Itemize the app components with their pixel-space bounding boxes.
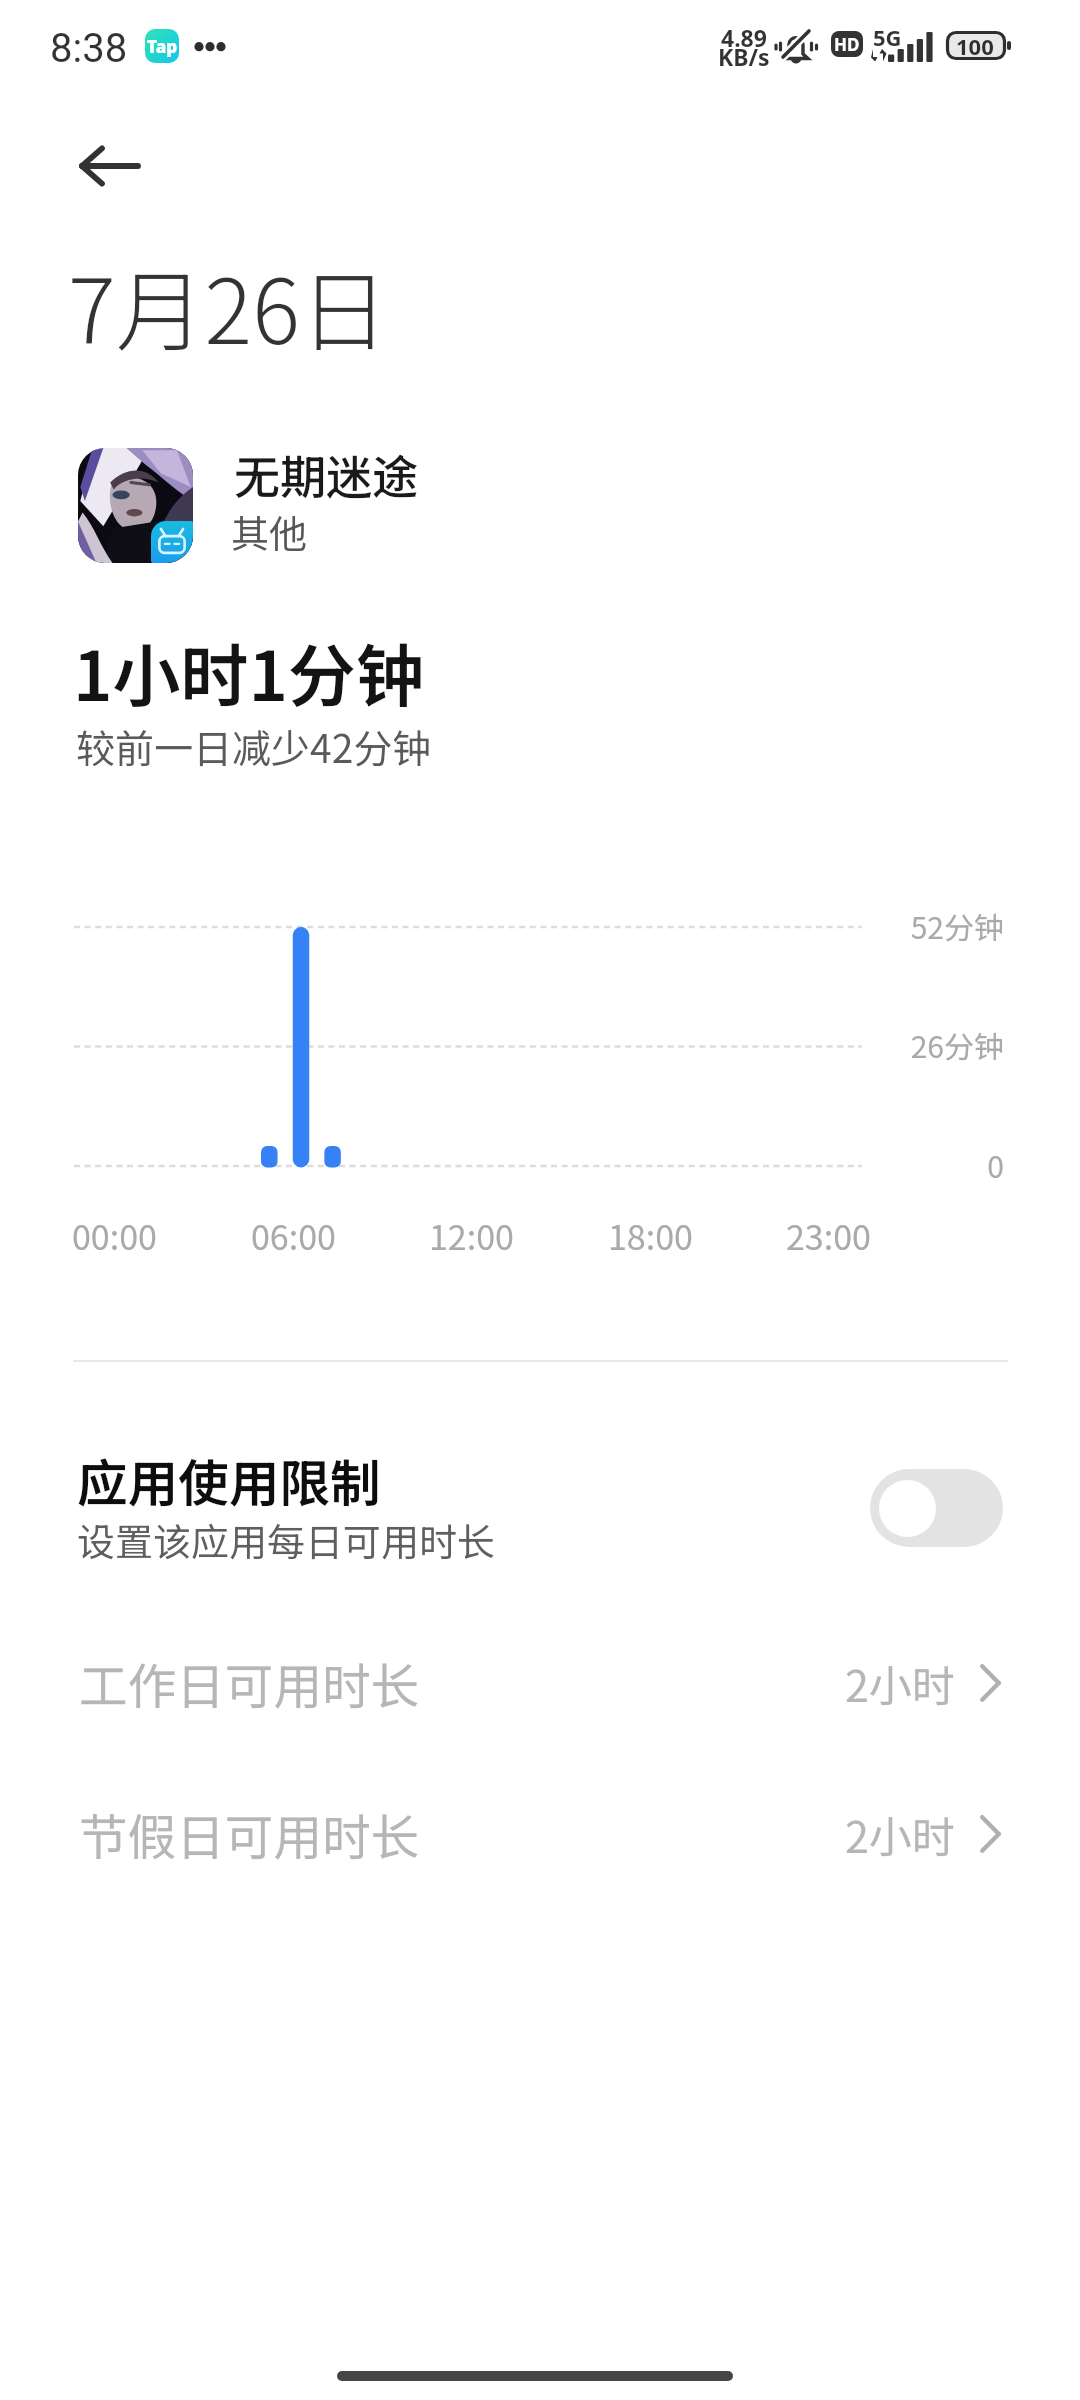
staticText: 其他 — [231, 504, 308, 559]
staticText: 18:00 — [608, 1211, 693, 1260]
button[interactable]: Toggle app usage limit — [870, 1469, 1003, 1547]
staticText: KB/s — [718, 41, 770, 72]
staticText: 00:00 — [72, 1211, 157, 1260]
staticText: 0 — [0, 1143, 1004, 1186]
staticText: 1小时1分钟 — [73, 622, 424, 720]
button[interactable]: 无期迷途 — [0, 428, 1080, 583]
staticText: 100 — [956, 31, 994, 60]
button[interactable]: Back — [62, 118, 158, 214]
staticText: 7月26日 — [68, 241, 389, 370]
staticText: 2小时 — [845, 1803, 955, 1865]
button[interactable]: 应用使用限制 — [0, 1425, 1080, 1590]
staticText: 节假日可用时长 — [79, 1799, 845, 1869]
staticText: 较前一日减少42分钟 — [76, 718, 432, 774]
staticText: 23:00 — [786, 1211, 871, 1260]
button[interactable]: 工作日可用时长 — [0, 1623, 1080, 1743]
staticText: 52分钟 — [0, 904, 1004, 947]
staticText: 2小时 — [845, 1652, 955, 1714]
staticText: 应用使用限制 — [77, 1443, 381, 1516]
staticText: 12:00 — [429, 1211, 514, 1260]
staticText: 工作日可用时长 — [79, 1648, 845, 1718]
staticText: 4.89 — [721, 22, 767, 53]
staticText: 06:00 — [251, 1211, 336, 1260]
staticText: 5G — [873, 22, 902, 52]
staticText: 26分钟 — [0, 1023, 1004, 1066]
staticText: 无期迷途 — [234, 441, 418, 508]
staticText: HD — [834, 33, 860, 56]
staticText: 8:38 — [50, 25, 128, 72]
staticText: Tap — [147, 35, 178, 58]
staticText: 设置该应用每日可用时长 — [77, 1512, 496, 1567]
button[interactable]: 节假日可用时长 — [0, 1774, 1080, 1894]
